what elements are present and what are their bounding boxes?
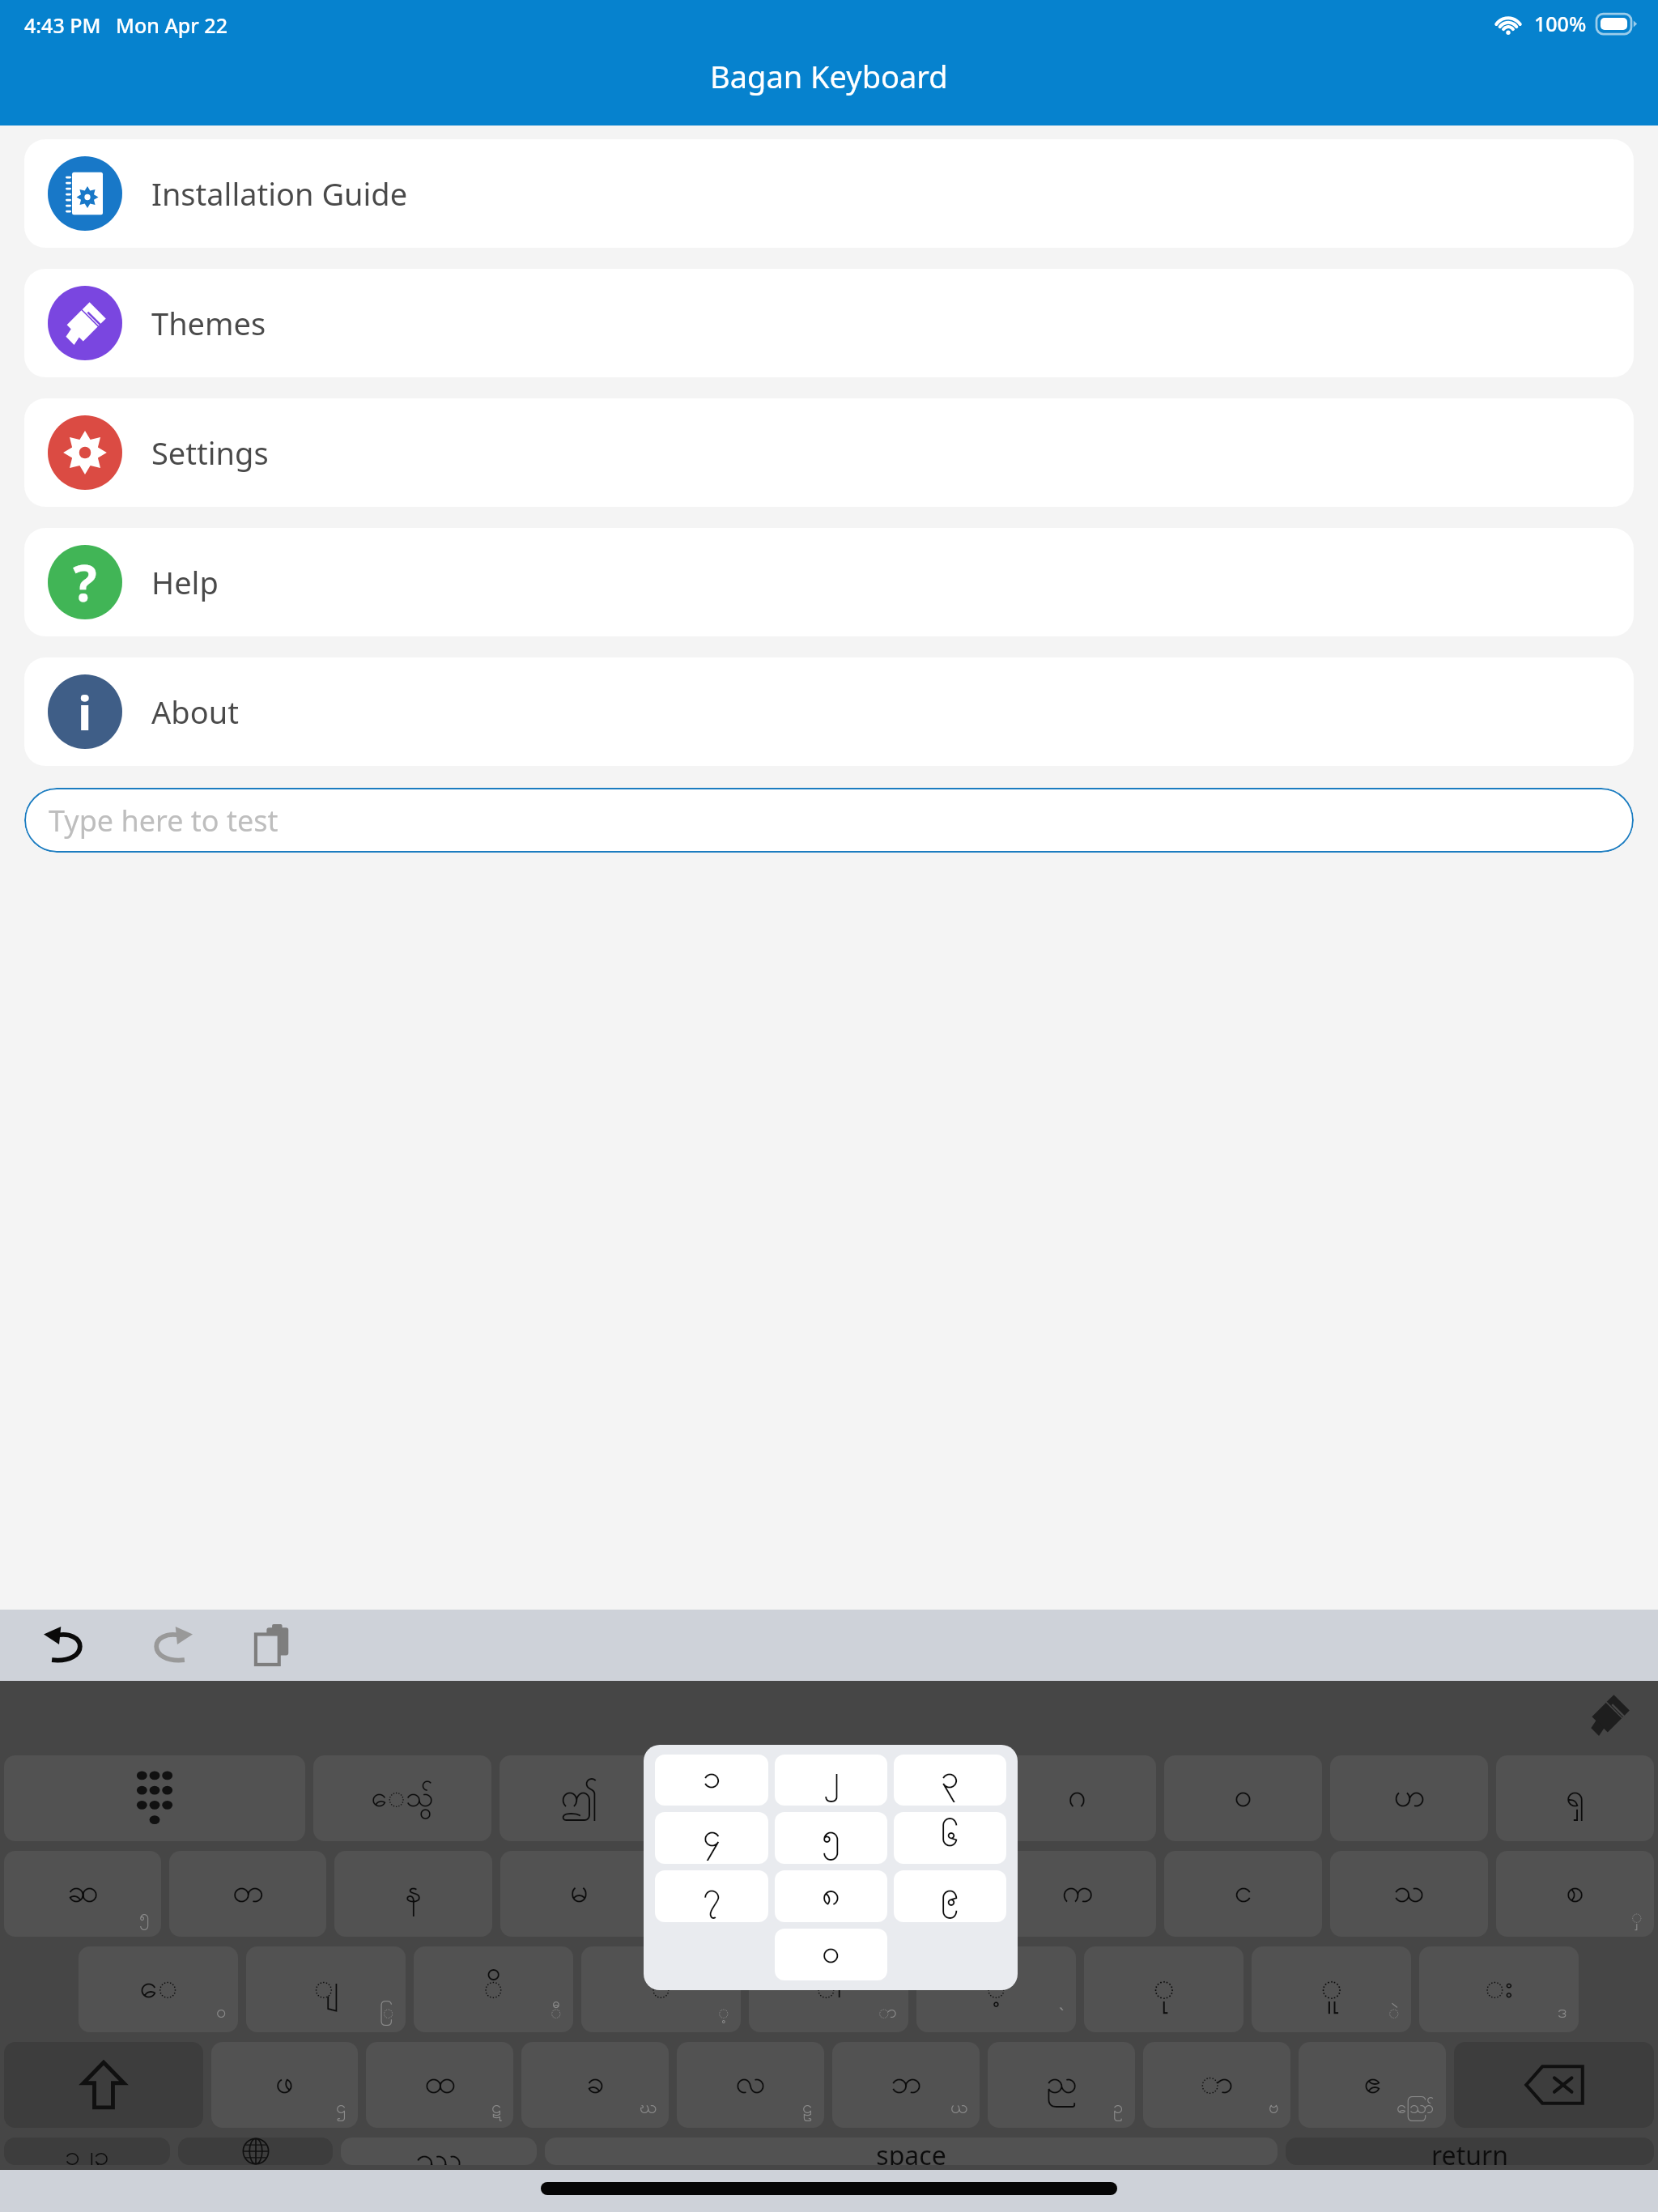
staticText: သ (1393, 1870, 1425, 1918)
button[interactable]: Undo (36, 1614, 97, 1676)
staticText: 100% (1534, 10, 1587, 37)
staticText: Installation Guide (151, 172, 408, 215)
button[interactable]: ဿ (341, 2138, 537, 2165)
button[interactable]: ၁၂၃ (4, 2138, 170, 2165)
staticText: န (405, 1870, 422, 1918)
button[interactable]: ပ (832, 1851, 990, 1937)
button[interactable]: i (24, 657, 1634, 766)
button[interactable]: ဤ (500, 1755, 658, 1841)
button[interactable]: Paste (243, 1614, 304, 1676)
button[interactable]: စ (1496, 1851, 1654, 1937)
staticText: space (876, 2138, 946, 2165)
staticText: ေ (139, 1966, 178, 2014)
button[interactable]: န (334, 1851, 492, 1937)
staticText: း (1485, 1966, 1513, 2014)
button[interactable]: Installation Guide (24, 139, 1634, 248)
button[interactable]: ့ (916, 1946, 1076, 2032)
button[interactable]: ? (24, 528, 1634, 636)
staticText: ၂ (823, 1756, 840, 1804)
staticText: ဟ (1393, 1775, 1426, 1823)
button[interactable]: ၈ (775, 1870, 887, 1922)
button[interactable]: Switch keyboard (178, 2138, 333, 2165)
staticText: ြ (380, 2000, 394, 2026)
button[interactable]: Settings (24, 398, 1634, 507)
staticText: စ (1566, 1870, 1584, 1918)
button[interactable]: ဘ (832, 2042, 980, 2128)
button[interactable]: ၄ (655, 1812, 768, 1864)
staticText: ဗ (1269, 2095, 1279, 2121)
staticText: ဘ (891, 2061, 922, 2109)
button[interactable]: ူ (1252, 1946, 1411, 2032)
button[interactable]: း (1419, 1946, 1579, 2032)
button[interactable]: Theme (1580, 1686, 1639, 1744)
button[interactable]: ည (988, 2042, 1135, 2128)
button[interactable]: ဝ (1164, 1755, 1322, 1841)
button[interactable]: Redo (139, 1614, 201, 1676)
button[interactable]: return (1286, 2138, 1654, 2165)
staticText: က (1061, 1870, 1094, 1918)
button[interactable]: င (1164, 1851, 1322, 1937)
button[interactable]: ဆ (4, 1851, 161, 1937)
button[interactable]: ျ (246, 1946, 406, 2032)
button[interactable]: ခ (521, 2042, 669, 2128)
button[interactable]: ဏ (666, 1755, 824, 1841)
button[interactable]: လ (677, 2042, 824, 2128)
staticText: ှ (1631, 1904, 1643, 1930)
button[interactable]: ါ (749, 1946, 908, 2032)
staticText: ဆ (67, 1870, 99, 1918)
button[interactable]: ု (1084, 1946, 1243, 2032)
button[interactable]: ဂ (998, 1755, 1156, 1841)
staticText: ဪ (1397, 2095, 1435, 2121)
button[interactable]: Type here to test (24, 788, 1634, 853)
staticText: ဌ (336, 2095, 346, 2121)
button[interactable]: ဍ (832, 1755, 990, 1841)
staticText: ဤ (560, 1775, 598, 1823)
button[interactable]: ၆ (894, 1812, 1006, 1864)
staticText: ီ (551, 2000, 562, 2026)
button[interactable]: ဟ (1330, 1755, 1488, 1841)
button[interactable]: space (545, 2138, 1278, 2165)
staticText: About (151, 691, 239, 733)
staticText: ဂ (1068, 1775, 1086, 1823)
button[interactable]: ၁ (655, 1755, 768, 1806)
staticText: ဏ (729, 1775, 762, 1823)
button[interactable]: ၇ (655, 1870, 768, 1922)
staticText: Mon Apr 22 (116, 11, 227, 39)
button[interactable]: တ (169, 1851, 326, 1937)
staticText: လ (735, 2061, 766, 2109)
staticText: i (78, 680, 92, 744)
button[interactable]: ၂ (775, 1755, 887, 1806)
button[interactable]: Themes (24, 269, 1634, 377)
button[interactable]: ေ (79, 1946, 238, 2032)
button[interactable]: သ (1330, 1851, 1488, 1937)
button[interactable]: ဧ (1299, 2042, 1446, 2128)
button[interactable]: မ (500, 1851, 658, 1937)
staticText: ဿ (415, 2138, 462, 2165)
button[interactable]: ် (581, 1946, 741, 2032)
button[interactable]: ာ (1143, 2042, 1290, 2128)
staticText: ၅ (822, 1814, 840, 1862)
button[interactable]: ေသွ် (313, 1755, 491, 1841)
button[interactable]: ၃ (894, 1755, 1006, 1806)
staticText: Bagan Keyboard (710, 55, 948, 97)
staticText: ါ (816, 1966, 842, 2014)
button[interactable]: က (998, 1851, 1156, 1937)
staticText: ၄ (703, 1814, 721, 1862)
button[interactable]: ထ (366, 2042, 513, 2128)
staticText: ၈ (822, 1873, 840, 1921)
staticText: ၇ (703, 1873, 721, 1921)
button[interactable]: ိ (414, 1946, 573, 2032)
staticText: ဖ (275, 2061, 294, 2109)
button[interactable]: ဖ (211, 2042, 358, 2128)
button[interactable]: ၀ (775, 1929, 887, 1980)
button[interactable]: အ (666, 1851, 824, 1937)
button[interactable]: ၡ (1496, 1755, 1654, 1841)
button[interactable]: Backspace (1454, 2042, 1654, 2128)
button[interactable]: ၉ (894, 1870, 1006, 1922)
button[interactable]: Numbers (4, 1755, 305, 1841)
button[interactable]: Shift (4, 2042, 203, 2128)
staticText: ဋ (491, 2095, 502, 2121)
button[interactable]: ၅ (775, 1812, 887, 1864)
staticText: ု (1153, 1963, 1175, 2016)
